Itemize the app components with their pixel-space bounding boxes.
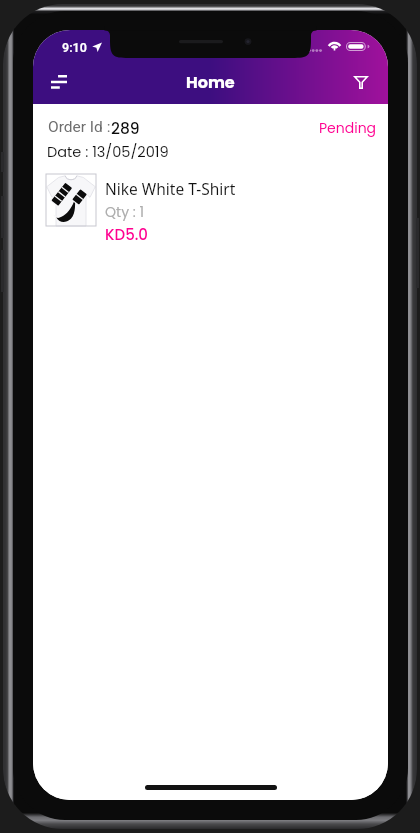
staticText: Order Id : xyxy=(48,118,111,136)
button[interactable]: Nike White T-Shirt xyxy=(46,174,375,245)
staticText: Qty : 1 xyxy=(105,202,144,222)
button[interactable]: Sort xyxy=(41,64,77,100)
button[interactable]: Filter xyxy=(343,64,379,100)
staticText: Home xyxy=(186,71,235,93)
staticText: Date : 13/05/2019 xyxy=(47,142,169,162)
staticText: Pending xyxy=(319,118,377,138)
staticText: Nike White T-Shirt xyxy=(105,178,236,199)
staticText: 289 xyxy=(111,118,140,138)
staticText: KD5.0 xyxy=(105,224,148,245)
staticText: 9:10 xyxy=(62,40,87,55)
